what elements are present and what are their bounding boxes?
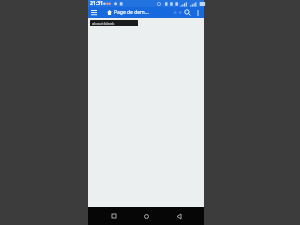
button[interactable]: Open navigation menu [88,7,99,18]
button[interactable]: Recent apps [107,209,121,223]
staticText: Page de dem… [114,9,149,16]
button[interactable]: Home [139,209,153,223]
button[interactable]: More options [193,8,203,18]
staticText: about:blank Chargement… [92,21,138,26]
button[interactable]: Search [182,7,193,18]
button[interactable]: Back [172,209,186,223]
staticText: 21:31 [90,0,103,7]
